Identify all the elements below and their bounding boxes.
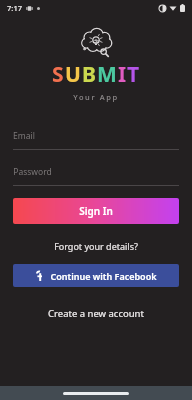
staticText: I (118, 60, 127, 89)
staticText: U (65, 60, 82, 89)
button[interactable]: Sign In (13, 198, 179, 224)
other: Idea cloud logo (77, 28, 115, 58)
staticText: Forgot your details? (54, 240, 138, 252)
staticText: Create a new account (48, 307, 144, 320)
staticText: Your App (73, 92, 119, 102)
staticText: Continue with Facebook (50, 270, 157, 282)
button[interactable]: Password (13, 166, 179, 186)
staticText: 7:17 (7, 3, 22, 13)
staticText: Sign In (79, 204, 113, 218)
staticText: Password (13, 166, 52, 178)
staticText: T (127, 60, 140, 89)
staticText: Email (13, 130, 35, 142)
staticText: M (97, 60, 118, 89)
button[interactable]: Create a new account (40, 305, 152, 322)
button[interactable]: Forgot your details? (46, 238, 146, 254)
button[interactable]: Facebook (13, 264, 179, 287)
button[interactable]: Email (13, 130, 179, 150)
staticText: S (52, 60, 65, 89)
staticText: B (82, 60, 97, 89)
other: Facebook (35, 271, 45, 281)
